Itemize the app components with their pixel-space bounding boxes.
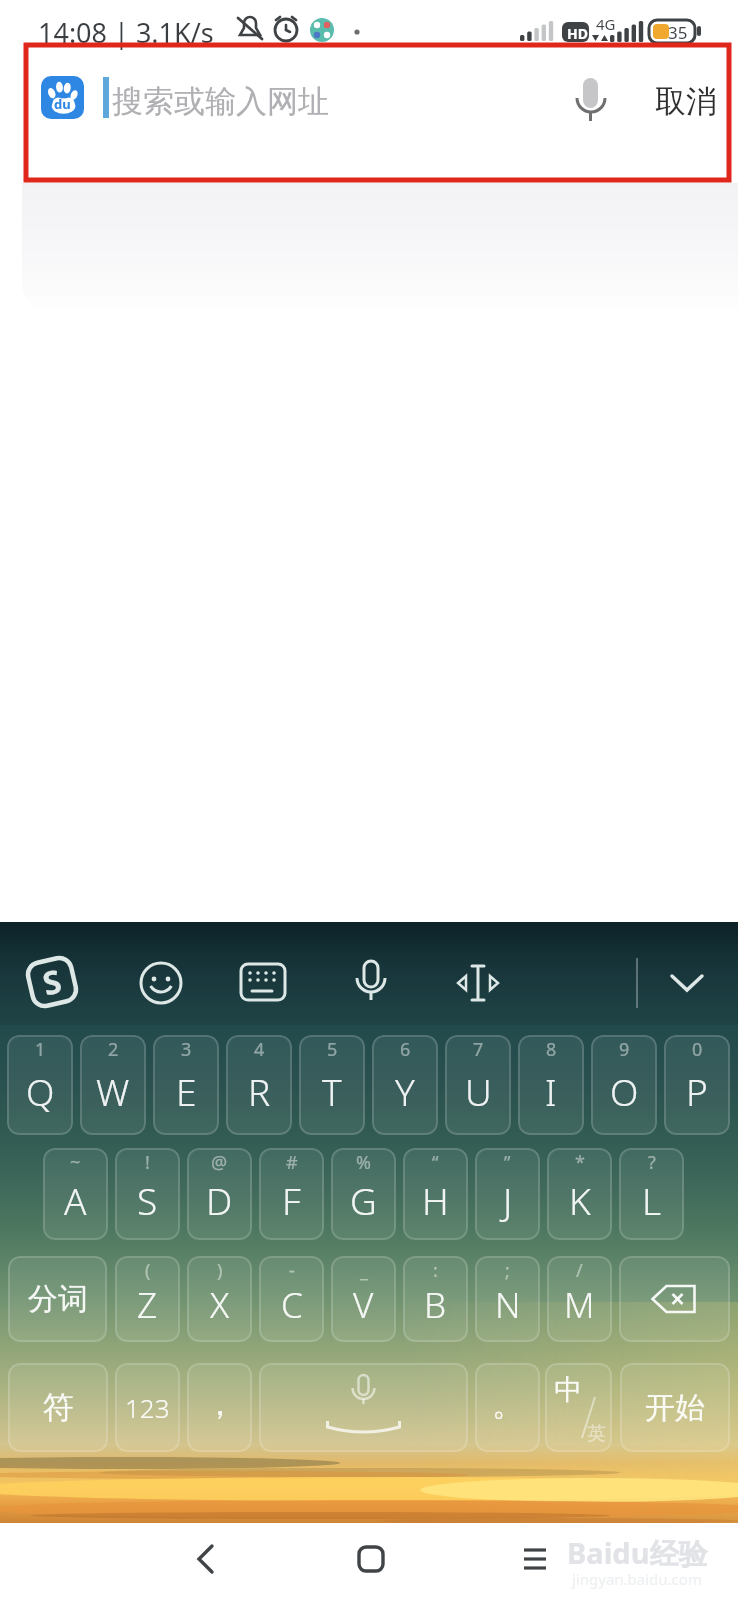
staticText: B: [424, 1281, 447, 1329]
button[interactable]: [186, 1537, 226, 1581]
staticText: X: [210, 1281, 230, 1329]
staticText: M: [564, 1281, 595, 1329]
button[interactable]: 开始: [620, 1363, 730, 1452]
staticText: ~: [70, 1150, 81, 1175]
button[interactable]: [568, 72, 614, 126]
button[interactable]: [619, 1256, 730, 1342]
button[interactable]: !: [115, 1148, 180, 1240]
button[interactable]: ~: [43, 1148, 108, 1240]
staticText: 英: [587, 1422, 606, 1446]
staticText: _: [360, 1258, 368, 1283]
staticText: 123: [125, 1390, 170, 1425]
staticText: C: [281, 1281, 303, 1329]
button[interactable]: 123: [115, 1363, 180, 1452]
button[interactable]: %: [331, 1148, 396, 1240]
staticText: (: [145, 1258, 151, 1283]
button[interactable]: #: [259, 1148, 324, 1240]
button[interactable]: (: [115, 1256, 180, 1342]
staticText: L: [642, 1175, 662, 1225]
button[interactable]: 4: [226, 1035, 292, 1135]
button[interactable]: ?: [619, 1148, 684, 1240]
staticText: Q: [26, 1066, 55, 1116]
button[interactable]: S: [18, 948, 86, 1016]
staticText: /: [576, 1258, 583, 1283]
button[interactable]: 2: [80, 1035, 146, 1135]
button[interactable]: [350, 1537, 390, 1581]
staticText: “: [432, 1150, 439, 1175]
staticText: 开始: [645, 1389, 705, 1427]
button[interactable]: 3: [153, 1035, 219, 1135]
staticText: I: [545, 1066, 557, 1116]
button[interactable]: [95, 58, 555, 138]
button[interactable]: [515, 1537, 555, 1581]
button[interactable]: [259, 1363, 468, 1452]
staticText: 5: [327, 1037, 338, 1062]
button[interactable]: 分词: [8, 1256, 107, 1342]
button[interactable]: 5: [299, 1035, 365, 1135]
staticText: U: [465, 1066, 492, 1116]
staticText: Z: [137, 1281, 158, 1329]
button[interactable]: 7: [445, 1035, 511, 1135]
staticText: 9: [619, 1037, 630, 1062]
button[interactable]: *: [547, 1148, 612, 1240]
button[interactable]: [138, 960, 184, 1006]
staticText: 4: [254, 1037, 265, 1062]
staticText: T: [322, 1066, 342, 1116]
staticText: G: [350, 1175, 377, 1225]
staticText: 符: [43, 1388, 74, 1427]
staticText: 8: [546, 1037, 557, 1062]
button[interactable]: /: [547, 1256, 612, 1342]
button[interactable]: :: [403, 1256, 468, 1342]
staticText: W: [96, 1066, 130, 1116]
staticText: #: [286, 1150, 298, 1175]
button[interactable]: 中: [545, 1363, 612, 1452]
staticText: :: [433, 1258, 438, 1283]
staticText: 14:08 | 3.1K/s: [38, 14, 214, 51]
button[interactable]: 。: [475, 1363, 540, 1452]
button[interactable]: 8: [518, 1035, 584, 1135]
button[interactable]: [239, 962, 287, 1004]
button[interactable]: @: [187, 1148, 252, 1240]
button[interactable]: ;: [475, 1256, 540, 1342]
staticText: 中: [554, 1372, 582, 1407]
staticText: 1: [35, 1037, 46, 1062]
staticText: H: [422, 1175, 449, 1225]
staticText: @: [211, 1150, 228, 1175]
button[interactable]: 取消: [655, 82, 717, 121]
button[interactable]: ，: [187, 1363, 252, 1452]
button[interactable]: du: [41, 76, 84, 119]
staticText: 2: [108, 1037, 119, 1062]
staticText: D: [206, 1175, 233, 1225]
staticText: R: [248, 1066, 271, 1116]
button[interactable]: 9: [591, 1035, 657, 1135]
staticText: E: [176, 1066, 197, 1116]
staticText: ?: [648, 1150, 656, 1175]
staticText: V: [353, 1281, 374, 1329]
staticText: jingyan.baidu.com: [572, 1569, 702, 1589]
button[interactable]: -: [259, 1256, 324, 1342]
button[interactable]: _: [331, 1256, 396, 1342]
staticText: J: [503, 1175, 513, 1225]
button[interactable]: 0: [664, 1035, 730, 1135]
staticText: A: [64, 1175, 87, 1225]
button[interactable]: ”: [475, 1148, 540, 1240]
staticText: ): [217, 1258, 223, 1283]
button[interactable]: 6: [372, 1035, 438, 1135]
button[interactable]: [349, 958, 393, 1008]
staticText: P: [686, 1066, 708, 1116]
staticText: 35: [668, 21, 688, 44]
staticText: 7: [473, 1037, 484, 1062]
staticText: ，: [204, 1384, 236, 1424]
staticText: %: [356, 1150, 371, 1175]
button[interactable]: “: [403, 1148, 468, 1240]
staticText: du: [54, 95, 71, 113]
button[interactable]: 符: [8, 1363, 108, 1452]
staticText: Y: [395, 1066, 415, 1116]
button[interactable]: [664, 966, 710, 1000]
staticText: K: [569, 1175, 591, 1225]
button[interactable]: [454, 962, 502, 1004]
staticText: HD: [567, 24, 588, 43]
button[interactable]: 1: [7, 1035, 73, 1135]
staticText: N: [495, 1281, 521, 1329]
button[interactable]: ): [187, 1256, 252, 1342]
